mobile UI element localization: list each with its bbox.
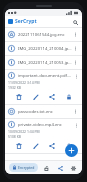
staticText: IMG_20220114_210053.jpg.enc xyxy=(18,60,72,66)
button[interactable]: More options xyxy=(72,108,79,115)
staticText: private-video.mp4.enc xyxy=(18,122,73,128)
button[interactable]: Shared xyxy=(55,163,65,173)
button[interactable]: More options xyxy=(72,59,79,66)
button[interactable]: 2022111061544.jpg.enc xyxy=(5,28,82,41)
staticText: IMG_20220114_210004.jpg.enc xyxy=(18,46,72,52)
button[interactable]: Share xyxy=(47,141,56,150)
button[interactable]: Share xyxy=(47,92,56,101)
staticText: 2022111061544.jpg.enc xyxy=(18,32,72,38)
button[interactable]: passcodes.txt.enc xyxy=(5,105,82,118)
button[interactable]: Delete xyxy=(14,92,23,101)
button[interactable]: Rename xyxy=(31,92,40,101)
staticText: passcodes.txt.enc xyxy=(18,109,72,115)
button[interactable]: Decrypt xyxy=(64,141,73,150)
button[interactable]: SerCrypt xyxy=(8,18,37,25)
button[interactable]: More options xyxy=(73,122,79,128)
button[interactable]: Rename xyxy=(31,141,40,150)
staticText: Encrypted xyxy=(18,165,35,170)
button[interactable]: Add file xyxy=(65,144,78,157)
button[interactable]: More options xyxy=(73,73,79,79)
staticText: important-document.pdf.enc xyxy=(18,73,73,79)
button[interactable]: Search xyxy=(71,18,79,26)
button[interactable]: More options xyxy=(72,45,79,52)
button[interactable]: Encrypted xyxy=(9,163,38,172)
staticText: 10/09/2022 1:34 PM xyxy=(8,129,40,134)
staticText: 5108 KB xyxy=(8,134,21,139)
staticText: 1932 KB xyxy=(8,85,21,90)
button[interactable]: Delete xyxy=(14,141,23,150)
button[interactable]: Settings xyxy=(68,163,78,173)
staticText: 11/09/2022 3:14 PM xyxy=(8,80,40,85)
button[interactable]: Decrypt xyxy=(64,92,73,101)
staticText: SerCrypt xyxy=(15,18,37,25)
button[interactable]: IMG_20220114_210053.jpg.enc xyxy=(5,56,82,69)
button[interactable]: More options xyxy=(72,31,79,38)
button[interactable]: private-video.mp4.enc xyxy=(5,119,82,153)
button[interactable]: Decrypted xyxy=(41,163,51,173)
button[interactable]: important-document.pdf.enc xyxy=(5,70,82,104)
button[interactable]: IMG_20220114_210004.jpg.enc xyxy=(5,42,82,55)
